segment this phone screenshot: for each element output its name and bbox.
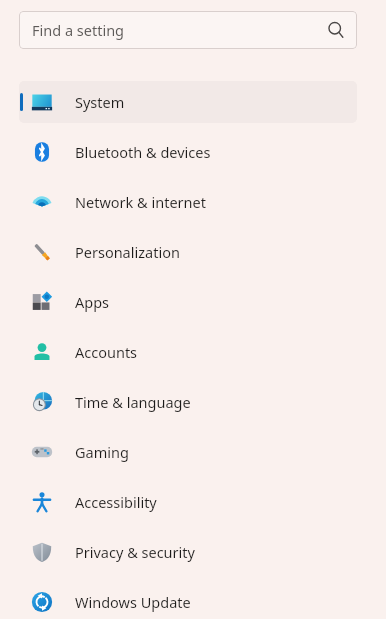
- staticText: Time & language: [75, 392, 191, 412]
- button[interactable]: Accessibility: [19, 481, 357, 523]
- staticText: Windows Update: [75, 592, 191, 612]
- staticText: Privacy & security: [75, 542, 195, 562]
- staticText: Accounts: [75, 342, 138, 362]
- button[interactable]: Bluetooth & devices: [19, 131, 357, 173]
- button[interactable]: Network & internet: [19, 181, 357, 223]
- other: Search: [327, 21, 345, 39]
- staticText: Accessibility: [75, 492, 157, 512]
- button[interactable]: Find a setting: [19, 11, 357, 49]
- button[interactable]: Apps: [19, 281, 357, 323]
- staticText: Bluetooth & devices: [75, 142, 211, 162]
- button[interactable]: Privacy & security: [19, 531, 357, 573]
- staticText: System: [75, 92, 125, 112]
- button[interactable]: Accounts: [19, 331, 357, 373]
- button[interactable]: Gaming: [19, 431, 357, 473]
- staticText: Find a setting: [32, 20, 125, 40]
- button[interactable]: Windows Update: [19, 581, 357, 619]
- button[interactable]: Time & language: [19, 381, 357, 423]
- staticText: Apps: [75, 292, 110, 312]
- staticText: Personalization: [75, 242, 180, 262]
- button[interactable]: Personalization: [19, 231, 357, 273]
- staticText: Network & internet: [75, 192, 206, 212]
- button[interactable]: System: [19, 81, 357, 123]
- staticText: Gaming: [75, 442, 129, 462]
